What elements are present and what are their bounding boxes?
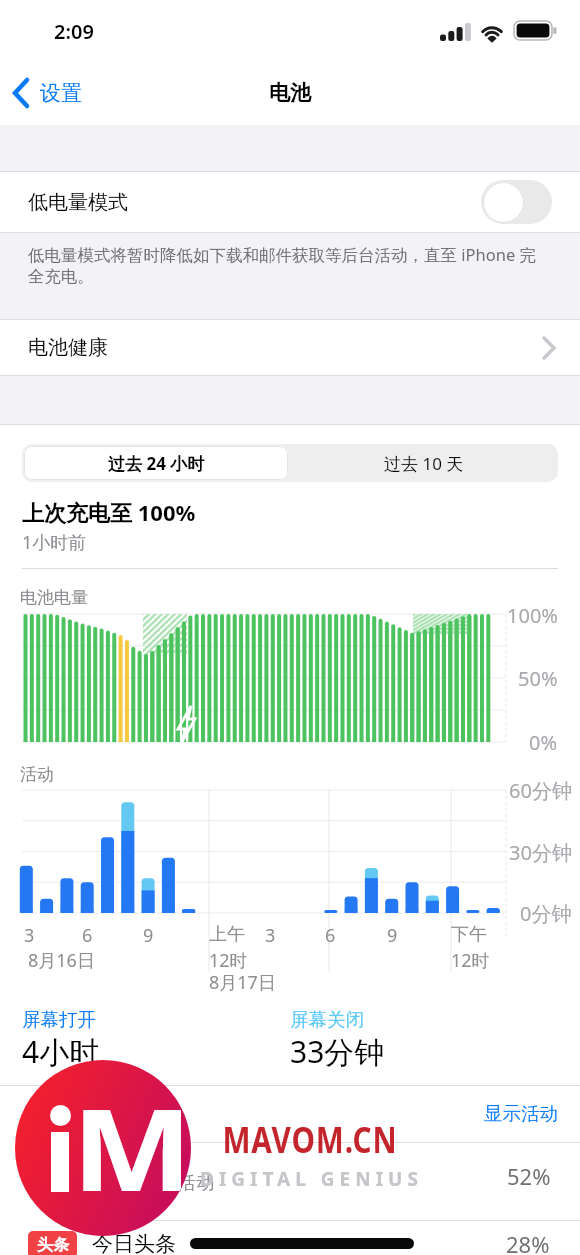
staticText: 30分钟 <box>509 839 572 865</box>
staticText: 12时 <box>209 948 248 973</box>
button[interactable]: 头条 <box>0 1221 580 1255</box>
staticText: 设置 <box>40 80 82 106</box>
staticText: 2:09 <box>54 18 94 45</box>
staticText: 3 <box>24 923 35 948</box>
staticText: 活动 <box>178 1172 214 1195</box>
staticText: 50% <box>518 665 558 691</box>
staticText: 4小时 <box>22 1031 100 1072</box>
staticText: 0% <box>529 729 558 755</box>
staticText: 今日头条 <box>92 1231 176 1255</box>
button[interactable]: 设置 <box>10 76 82 110</box>
staticText: 100% <box>507 602 558 628</box>
staticText: 头条 <box>37 1235 69 1255</box>
staticText: DIGITAL GENIUS <box>200 1166 423 1192</box>
staticText: 过去 24 小时 <box>108 452 205 475</box>
button[interactable]: 过去 24 小时 <box>24 446 288 480</box>
staticText: M <box>72 1070 191 1224</box>
staticText: 0分钟 <box>520 900 572 926</box>
staticText: 低电量模式将暂时降低如下载和邮件获取等后台活动，直至 iPhone 完 <box>28 243 537 266</box>
button[interactable]: 低电量模式 <box>0 172 580 232</box>
staticText: 屏幕打开 <box>22 1008 96 1031</box>
staticText: 9 <box>387 923 398 948</box>
staticText: 3 <box>265 923 276 948</box>
staticText: 8月16日 <box>28 948 95 973</box>
staticText: 电池电量 <box>20 587 88 608</box>
staticText: 电池健康 <box>28 335 108 360</box>
button[interactable]: 过去 10 天 <box>290 444 558 482</box>
staticText: 28% <box>506 1229 550 1255</box>
staticText: 9 <box>143 923 154 948</box>
staticText: 52% <box>507 1161 551 1191</box>
staticText: 上午 <box>209 923 245 946</box>
staticText: 上次充电至 100% <box>22 497 196 527</box>
staticText: 60分钟 <box>509 777 572 803</box>
button[interactable]: 电池健康 <box>0 320 580 375</box>
staticText: 33分钟 <box>290 1031 385 1072</box>
staticText: 下午 <box>451 923 487 946</box>
staticText: 6 <box>82 923 93 948</box>
staticText: 显示活动 <box>484 1102 558 1125</box>
button[interactable]: 显示活动 <box>400 1099 558 1127</box>
staticText: MAVOM.CN <box>222 1116 397 1164</box>
staticText: 6 <box>325 923 336 948</box>
staticText: 1小时前 <box>22 530 87 555</box>
staticText: 电池 <box>0 80 580 106</box>
staticText: 过去 10 天 <box>384 452 464 475</box>
staticText: 12时 <box>451 948 490 973</box>
staticText: 屏幕关闭 <box>290 1008 364 1031</box>
staticText: 8月17日 <box>209 970 276 995</box>
staticText: 活动 <box>20 764 54 785</box>
staticText: 低电量模式 <box>28 190 128 215</box>
staticText: 全充电。 <box>28 266 94 287</box>
